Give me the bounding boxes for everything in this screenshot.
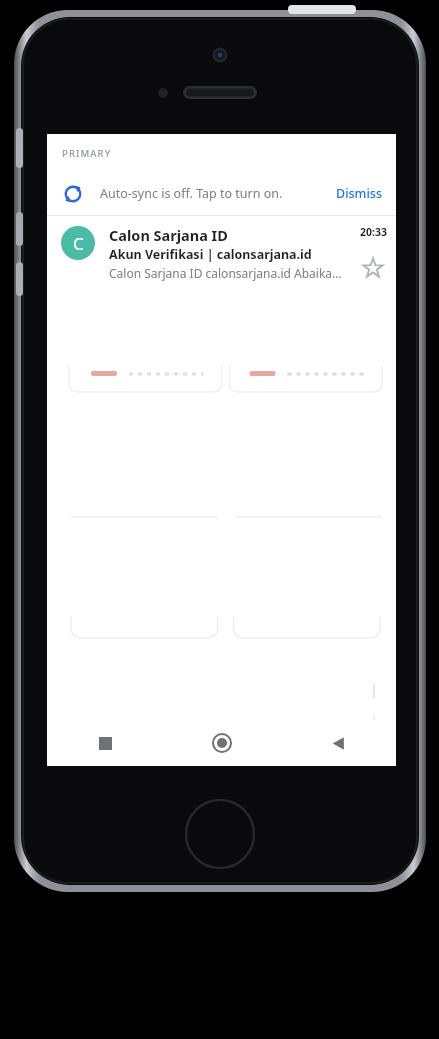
button[interactable]: Sync bbox=[47, 172, 396, 215]
other: Sync bbox=[62, 183, 84, 205]
button[interactable]: C bbox=[47, 216, 396, 288]
button[interactable]: Star bbox=[362, 257, 384, 279]
staticText: Calon Sarjana ID calonsarjana.id Abaikan… bbox=[109, 265, 346, 281]
staticText: Calon Sarjana ID bbox=[109, 225, 228, 245]
staticText: PRIMARY bbox=[62, 147, 112, 160]
button[interactable]: Recent apps bbox=[47, 720, 164, 766]
staticText: Akun Verifikasi | calonsarjana.id bbox=[109, 246, 312, 263]
staticText: Dismiss bbox=[336, 185, 382, 202]
staticText: Auto-sync is off. Tap to turn on. bbox=[100, 185, 283, 202]
button[interactable]: Dismiss bbox=[336, 185, 382, 202]
button[interactable]: Back bbox=[280, 720, 396, 766]
staticText: 20:33 bbox=[360, 225, 387, 239]
button[interactable]: Home bbox=[164, 720, 280, 766]
staticText: C bbox=[73, 232, 84, 255]
